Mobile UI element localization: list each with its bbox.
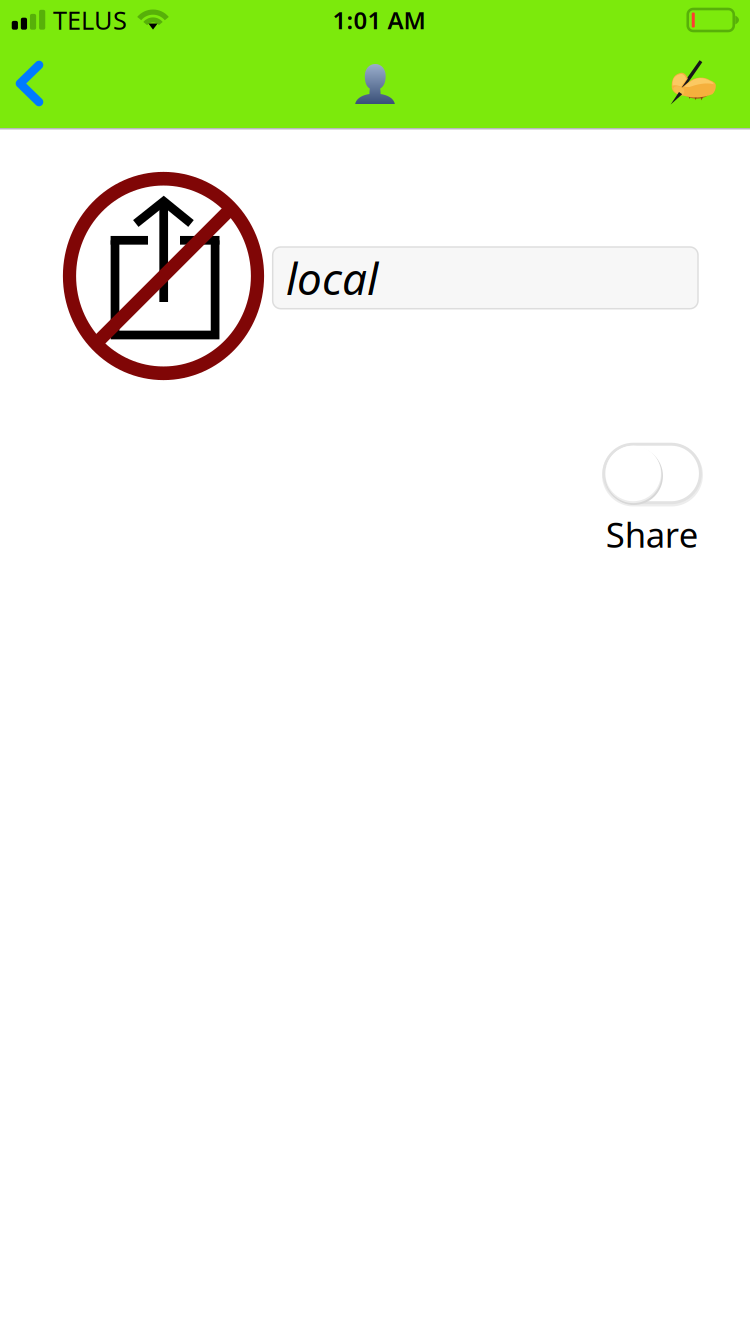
staticText: TELUS [53, 3, 127, 37]
button[interactable]: Compose [650, 41, 736, 121]
button[interactable]: Share [602, 443, 702, 557]
staticText: 1:01 AM [332, 4, 425, 36]
button[interactable]: Contact [332, 44, 418, 124]
staticText: local [286, 249, 378, 307]
staticText: Share [606, 511, 699, 557]
button[interactable]: Back [0, 43, 66, 123]
